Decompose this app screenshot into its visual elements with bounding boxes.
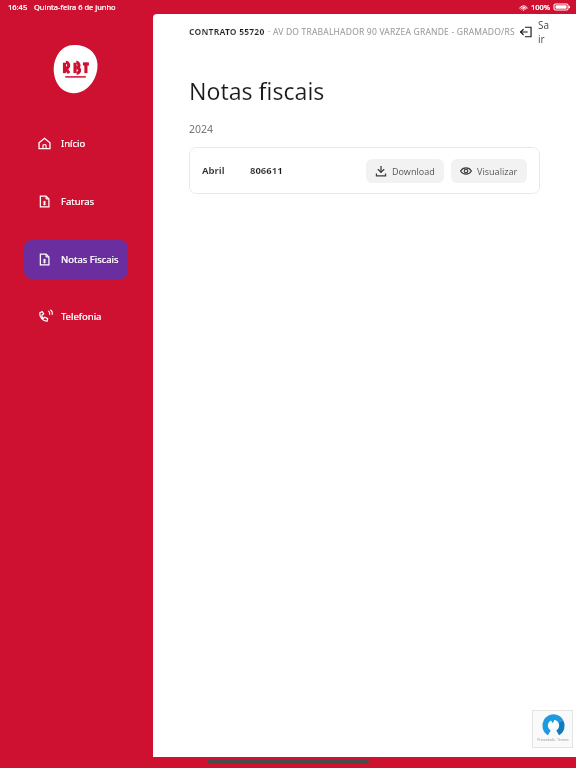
staticText: Faturas: [61, 195, 95, 208]
button[interactable]: Sair: [515, 15, 554, 49]
staticText: · AV DO TRABALHADOR 90 VARZEA GRANDE - G…: [268, 26, 515, 38]
staticText: Abril: [202, 164, 225, 177]
staticText: Sair: [538, 18, 550, 46]
staticText: Privacidade - Termos: [537, 738, 569, 742]
button[interactable]: Abril: [189, 147, 540, 194]
button[interactable]: Telefonia: [24, 297, 128, 336]
staticText: CONTRATO 55720: [189, 26, 265, 38]
staticText: 806611: [250, 164, 283, 177]
staticText: Visualizar: [477, 165, 518, 177]
staticText: 2024: [189, 122, 214, 136]
staticText: Telefonia: [61, 310, 102, 323]
staticText: Notas fiscais: [189, 75, 325, 106]
button[interactable]: Notas Fiscais: [24, 240, 128, 279]
button[interactable]: Download: [366, 159, 444, 183]
button[interactable]: Início: [24, 124, 128, 163]
button[interactable]: Visualizar: [451, 159, 527, 183]
staticText: 100%: [531, 2, 551, 12]
staticText: Notas Fiscais: [61, 253, 119, 266]
staticText: Quinta-feira 6 de junho: [34, 2, 116, 12]
staticText: Início: [61, 137, 86, 150]
staticText: Download: [392, 165, 435, 177]
button[interactable]: Faturas: [24, 182, 128, 221]
staticText: 16:45: [8, 2, 28, 12]
button[interactable]: reCAPTCHA: [532, 710, 573, 748]
